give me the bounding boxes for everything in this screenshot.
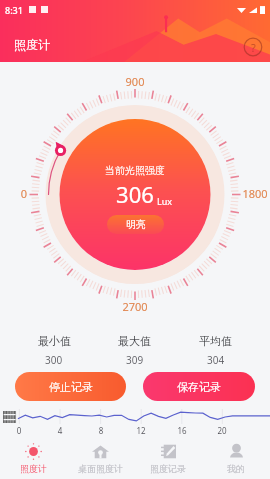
staticText: 桌面照度计 [78,463,123,474]
staticText: 12 [131,425,151,436]
staticText: Lux [157,195,173,207]
staticText: 2700 [118,299,152,314]
staticText: 0 [15,186,33,201]
staticText: 明亮 [126,218,146,231]
staticText: 8 [91,425,111,436]
button[interactable]: 我的 [202,437,270,479]
staticText: 16 [172,425,192,436]
button[interactable]: 保存记录 [143,372,255,401]
staticText: 8:31 [5,4,23,16]
staticText: 平均值 [199,334,232,348]
staticText: 300 [45,353,63,367]
staticText: 306 [0,179,270,209]
button[interactable]: 照度计 [0,437,67,479]
staticText: 309 [126,353,144,367]
staticText: 停止记录 [49,380,93,394]
staticText: 0 [9,425,29,436]
button[interactable]: 桌面照度计 [67,437,134,479]
button[interactable]: 停止记录 [15,372,126,401]
staticText: 20 [212,425,232,436]
button[interactable]: 明亮 [107,215,164,234]
staticText: 304 [207,353,225,367]
staticText: 照度计 [20,463,47,474]
button[interactable]: Help [243,37,263,57]
staticText: 照度记录 [150,463,186,474]
staticText: 最小值 [38,334,71,348]
staticText: 最大值 [118,334,151,348]
staticText: 900 [118,74,152,89]
staticText: 4 [50,425,70,436]
staticText: 我的 [227,463,245,474]
staticText: 保存记录 [177,380,221,394]
staticText: 1800 [238,186,270,201]
staticText: 照度计 [14,37,50,52]
button[interactable]: 照度记录 [134,437,202,479]
staticText: ? [251,40,256,55]
staticText: 当前光照强度 [0,164,270,177]
